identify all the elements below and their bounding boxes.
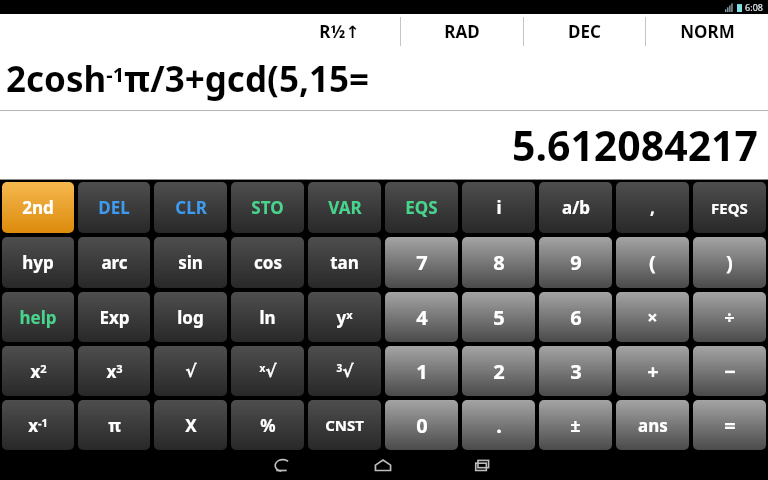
staticText: (: [649, 249, 656, 276]
staticText: 6:08: [745, 1, 763, 13]
staticText: DEC: [568, 20, 601, 43]
button[interactable]: 5: [462, 292, 535, 342]
button[interactable]: log: [154, 292, 227, 342]
button[interactable]: R½↑: [278, 14, 400, 48]
button[interactable]: DEL: [78, 182, 150, 233]
staticText: 8: [493, 249, 505, 276]
staticText: x3: [106, 360, 123, 383]
button[interactable]: a/b: [539, 182, 612, 233]
staticText: ×: [647, 305, 658, 330]
button[interactable]: ,: [616, 182, 689, 233]
button[interactable]: arc: [78, 237, 150, 288]
button[interactable]: 0: [385, 400, 458, 450]
staticText: CLR: [175, 196, 207, 219]
staticText: RAD: [444, 20, 480, 43]
staticText: 1: [416, 358, 428, 385]
staticText: R½↑: [319, 20, 360, 43]
button[interactable]: RAD: [401, 14, 523, 48]
staticText: yx: [336, 306, 353, 329]
staticText: a/b: [562, 196, 590, 219]
staticText: CNST: [325, 415, 364, 435]
staticText: cos: [254, 251, 282, 274]
button[interactable]: =: [693, 400, 766, 450]
staticText: 2nd: [22, 196, 54, 219]
button[interactable]: x-1: [2, 400, 74, 450]
button[interactable]: i: [462, 182, 535, 233]
staticText: NORM: [680, 20, 735, 43]
button[interactable]: Recents: [469, 452, 499, 480]
button[interactable]: hyp: [2, 237, 74, 288]
button[interactable]: X: [154, 400, 227, 450]
staticText: arc: [101, 251, 128, 274]
button[interactable]: ln: [231, 292, 304, 342]
button[interactable]: π: [78, 400, 150, 450]
staticText: +: [647, 358, 659, 385]
button[interactable]: x3: [78, 346, 150, 396]
button[interactable]: NORM: [646, 14, 768, 48]
button[interactable]: EQS: [385, 182, 458, 233]
button[interactable]: VAR: [308, 182, 381, 233]
button[interactable]: √: [154, 346, 227, 396]
button[interactable]: tan: [308, 237, 381, 288]
button[interactable]: ±: [539, 400, 612, 450]
button[interactable]: (: [616, 237, 689, 288]
staticText: ,: [650, 196, 655, 219]
staticText: 3: [570, 358, 582, 385]
button[interactable]: sin: [154, 237, 227, 288]
button[interactable]: x√: [231, 346, 304, 396]
button[interactable]: 3: [539, 346, 612, 396]
button[interactable]: 7: [385, 237, 458, 288]
button[interactable]: +: [616, 346, 689, 396]
staticText: DEL: [98, 196, 130, 219]
staticText: %: [260, 414, 276, 437]
staticText: 6: [570, 304, 582, 331]
button[interactable]: −: [693, 346, 766, 396]
button[interactable]: CLR: [154, 182, 227, 233]
button[interactable]: x2: [2, 346, 74, 396]
staticText: .: [496, 412, 502, 439]
button[interactable]: ×: [616, 292, 689, 342]
button[interactable]: Back: [269, 452, 299, 480]
staticText: =: [724, 412, 736, 439]
staticText: 5: [493, 304, 505, 331]
staticText: EQS: [405, 196, 438, 219]
staticText: π: [108, 414, 121, 437]
button[interactable]: help: [2, 292, 74, 342]
staticText: x2: [30, 360, 47, 383]
button[interactable]: 4: [385, 292, 458, 342]
button[interactable]: Exp: [78, 292, 150, 342]
staticText: −: [724, 358, 736, 385]
button[interactable]: Home: [369, 452, 399, 480]
staticText: x√: [259, 361, 277, 381]
staticText: tan: [330, 251, 359, 274]
staticText: 2cosh-1π/3+gcd(5,15=: [6, 55, 369, 103]
button[interactable]: CNST: [308, 400, 381, 450]
button[interactable]: 2nd: [2, 182, 74, 233]
staticText: 9: [570, 249, 582, 276]
staticText: ln: [259, 306, 276, 329]
button[interactable]: STO: [231, 182, 304, 233]
button[interactable]: 6: [539, 292, 612, 342]
button[interactable]: 1: [385, 346, 458, 396]
staticText: i: [496, 196, 502, 219]
staticText: FEQS: [711, 198, 748, 218]
button[interactable]: FEQS: [693, 182, 766, 233]
button[interactable]: ): [693, 237, 766, 288]
button[interactable]: .: [462, 400, 535, 450]
button[interactable]: ans: [616, 400, 689, 450]
staticText: ÷: [724, 305, 735, 330]
staticText: log: [177, 306, 204, 329]
staticText: 4: [416, 304, 428, 331]
button[interactable]: DEC: [524, 14, 645, 48]
button[interactable]: 9: [539, 237, 612, 288]
button[interactable]: 3√: [308, 346, 381, 396]
staticText: VAR: [328, 196, 362, 219]
button[interactable]: yx: [308, 292, 381, 342]
button[interactable]: ÷: [693, 292, 766, 342]
button[interactable]: cos: [231, 237, 304, 288]
staticText: STO: [251, 196, 284, 219]
button[interactable]: %: [231, 400, 304, 450]
button[interactable]: 2: [462, 346, 535, 396]
button[interactable]: 8: [462, 237, 535, 288]
staticText: help: [19, 306, 57, 329]
